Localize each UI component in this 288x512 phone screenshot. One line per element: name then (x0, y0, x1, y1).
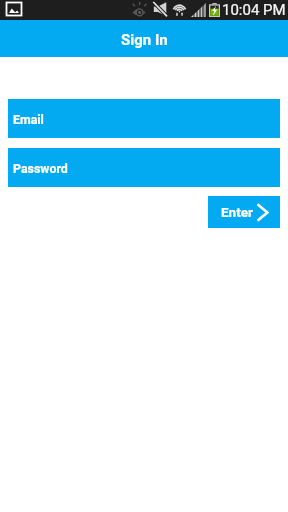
button[interactable]: Sign In (0, 20, 288, 57)
staticText: Password (13, 161, 68, 176)
other: Smart stay (132, 4, 146, 16)
button[interactable]: Enter (208, 196, 280, 228)
button[interactable]: Email (8, 99, 280, 138)
staticText: Enter (221, 204, 253, 220)
other: Sound off (153, 2, 167, 16)
button[interactable]: Password (8, 148, 280, 187)
staticText: Sign In (121, 31, 168, 49)
staticText: Email (13, 112, 44, 127)
other: Wi-Fi (172, 2, 187, 16)
staticText: 10:04 PM (222, 1, 286, 19)
